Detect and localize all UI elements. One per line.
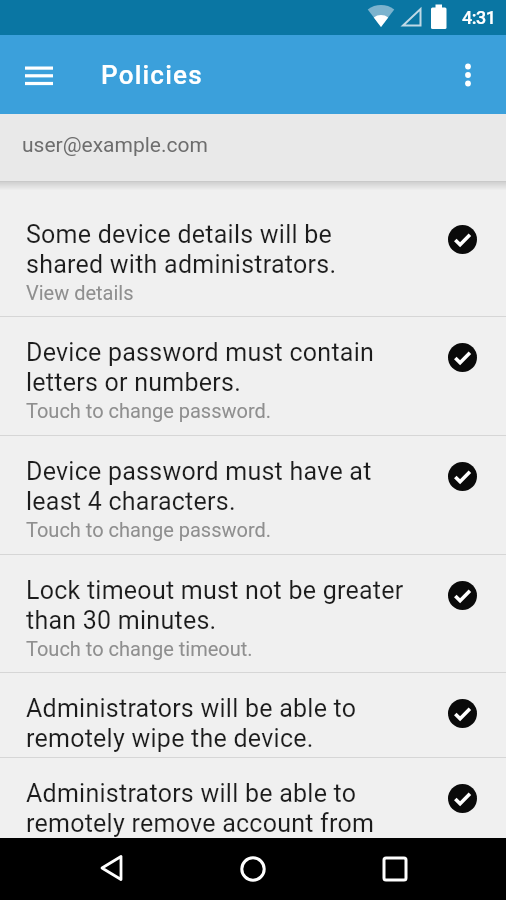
button[interactable]: Some device details will be shared with … — [0, 199, 506, 317]
staticText: Device password must contain letters or … — [26, 338, 375, 397]
staticText: Touch to change password. — [26, 399, 272, 422]
button[interactable] — [182, 838, 324, 900]
button[interactable] — [40, 838, 182, 900]
staticText: Touch to change password. — [26, 518, 272, 541]
button[interactable] — [448, 55, 488, 95]
staticText: 4:31 — [462, 7, 496, 28]
staticText: user@example.com — [22, 133, 208, 158]
button[interactable]: Device password must have at least 4 cha… — [0, 436, 506, 555]
staticText: View details — [26, 281, 134, 304]
staticText: Policies — [101, 60, 203, 90]
button[interactable] — [16, 52, 62, 98]
button[interactable] — [324, 838, 466, 900]
staticText: Lock timeout must not be greater than 30… — [26, 576, 404, 635]
staticText: Administrators will be able to remotely … — [26, 694, 357, 753]
button[interactable]: Lock timeout must not be greater than 30… — [0, 555, 506, 673]
staticText: Administrators will be able to remotely … — [26, 779, 375, 838]
button[interactable]: Administrators will be able to remotely … — [0, 673, 506, 758]
staticText: Touch to change timeout. — [26, 637, 253, 660]
button[interactable]: Device password must contain letters or … — [0, 317, 506, 436]
staticText: Device password must have at least 4 cha… — [26, 457, 372, 516]
button[interactable]: user@example.com — [0, 114, 506, 181]
button[interactable]: Administrators will be able to remotely … — [0, 758, 506, 838]
staticText: Some device details will be shared with … — [26, 220, 337, 279]
